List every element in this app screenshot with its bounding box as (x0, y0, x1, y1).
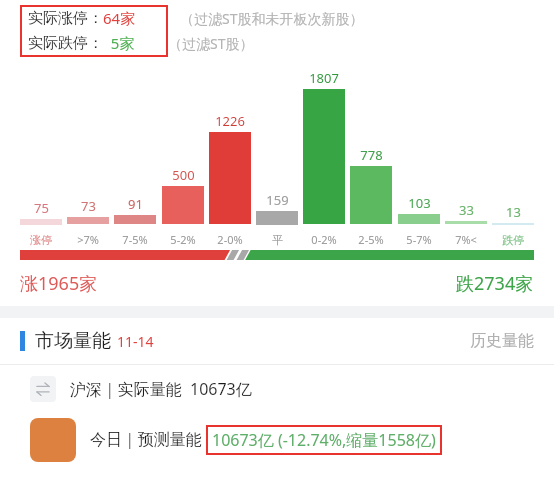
staticText: 11-14 (117, 332, 154, 351)
staticText: 10673亿 (-12.74%,缩量1558亿) (212, 429, 436, 451)
staticText: 7%< (455, 232, 477, 247)
staticText: 跌停 (502, 233, 524, 247)
staticText: 2-5% (358, 232, 384, 247)
staticText: 沪深｜实际量能 10673亿 (70, 378, 252, 400)
staticText: 64家 (103, 8, 136, 28)
staticText: 今日｜预测量能 (90, 430, 202, 450)
staticText: 1807 (309, 69, 339, 87)
staticText: 实际涨停： (28, 9, 103, 28)
staticText: 跌2734家 (456, 271, 534, 296)
staticText: 1226 (215, 112, 245, 130)
staticText: 7-5% (122, 232, 148, 247)
button[interactable]: 今日｜预测量能 (0, 413, 554, 467)
other: 沪深 实际量能 (30, 376, 56, 402)
staticText: （过滤ST股） (168, 34, 254, 53)
staticText: 5-2% (170, 232, 196, 247)
staticText: 实际跌停： (28, 34, 103, 53)
button[interactable]: 市场量能 (0, 318, 554, 364)
staticText: 159 (266, 191, 289, 209)
staticText: （过滤ST股和未开板次新股） (180, 9, 364, 28)
staticText: 涨1965家 (20, 271, 98, 296)
staticText: 500 (172, 166, 195, 184)
button[interactable]: 沪深 实际量能 (0, 365, 554, 413)
staticText: 5-7% (406, 232, 432, 247)
staticText: 平 (272, 233, 283, 247)
staticText: 73 (81, 197, 96, 215)
staticText: >7% (77, 232, 99, 247)
staticText: 市场量能 (35, 329, 111, 353)
staticText: 0-2% (311, 232, 337, 247)
staticText: 13 (506, 203, 521, 221)
staticText: 75 (34, 199, 49, 217)
staticText: 103 (408, 194, 431, 212)
staticText: 5家 (103, 33, 135, 53)
staticText: 涨停 (30, 233, 52, 247)
staticText: 91 (128, 195, 143, 213)
staticText: 33 (459, 201, 474, 219)
staticText: 2-0% (217, 232, 243, 247)
staticText: 778 (360, 146, 383, 164)
staticText: 历史量能 (470, 331, 534, 351)
